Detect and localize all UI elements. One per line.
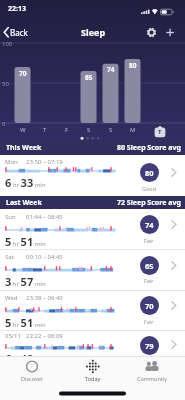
staticText: Fair <box>144 318 154 325</box>
staticText: Fair <box>144 358 154 365</box>
staticText: 23:38 – 06:40 <box>26 294 63 302</box>
staticText: 70 <box>19 69 27 78</box>
staticText: 80 <box>145 168 154 178</box>
staticText: Community <box>137 375 168 382</box>
staticText: Sun <box>5 213 16 221</box>
staticText: T <box>43 126 47 134</box>
staticText: 00:10 – 04:45 <box>26 253 63 261</box>
staticText: 65 <box>85 73 93 82</box>
staticText: Mon <box>5 158 18 166</box>
staticText: 5 hr 51 min <box>5 315 46 330</box>
staticText: 05/11 <box>5 332 21 340</box>
staticText: 6 hr 42 min <box>5 351 46 366</box>
staticText: 5 hr 51 min <box>5 234 46 249</box>
staticText: 01:44 – 08:45 <box>26 213 63 221</box>
staticText: Good <box>142 185 157 192</box>
staticText: 80 Sleep Score avg <box>117 143 181 153</box>
staticText: 22:13 <box>8 4 26 14</box>
staticText: 22:22 – 06:09 <box>26 332 63 340</box>
staticText: Wed <box>5 294 18 302</box>
staticText: Back <box>10 27 28 38</box>
staticText: 65 <box>145 261 154 271</box>
staticText: 100 <box>2 40 13 48</box>
staticText: S <box>109 126 113 134</box>
staticText: 74 <box>145 220 154 230</box>
staticText: Discover <box>21 375 44 382</box>
staticText: 70 <box>145 301 154 311</box>
staticText: 79 <box>145 341 154 351</box>
staticText: S <box>87 126 91 134</box>
staticText: 72 Sleep Score avg <box>117 198 181 208</box>
staticText: Fair <box>144 277 154 284</box>
staticText: 23:50 – 07:19 <box>26 158 63 166</box>
staticText: Sat <box>5 253 14 261</box>
staticText: Sleep <box>81 26 106 38</box>
staticText: This Week <box>6 143 42 153</box>
staticText: 50 <box>2 80 9 88</box>
staticText: W <box>20 126 26 134</box>
staticText: 74 <box>107 65 115 74</box>
staticText: Last Week <box>6 198 42 208</box>
staticText: Fair <box>144 237 154 244</box>
staticText: 80 <box>129 61 137 70</box>
staticText: M <box>130 126 136 134</box>
staticText: 6 hr 33 min <box>5 175 46 190</box>
staticText: F <box>65 126 69 134</box>
staticText: 0 <box>2 120 6 128</box>
staticText: Today <box>85 375 101 382</box>
staticText: 3 hr 57 min <box>5 274 46 289</box>
staticText: T <box>158 128 162 136</box>
